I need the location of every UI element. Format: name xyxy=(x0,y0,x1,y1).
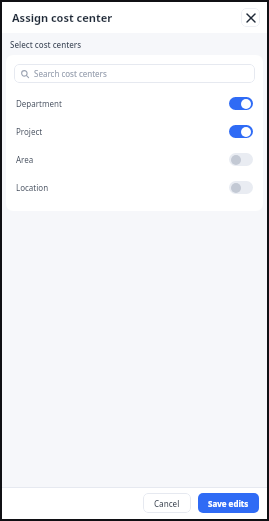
staticText: Assign cost center xyxy=(12,10,113,25)
button[interactable]: Project xyxy=(6,117,263,145)
button[interactable]: Off xyxy=(229,153,253,166)
button[interactable]: Off xyxy=(229,181,253,194)
button[interactable]: Search cost centers xyxy=(14,64,255,83)
button[interactable]: Department xyxy=(6,89,263,117)
staticText: Area xyxy=(16,154,34,165)
button[interactable]: Area xyxy=(6,145,263,173)
staticText: Department xyxy=(16,98,62,109)
button[interactable]: Cancel xyxy=(143,493,191,513)
staticText: Cancel xyxy=(154,498,180,509)
button[interactable]: Save edits xyxy=(198,493,259,513)
staticText: Location xyxy=(16,182,49,193)
staticText: Select cost centers xyxy=(10,39,82,50)
staticText: Project xyxy=(16,126,43,137)
button[interactable]: On xyxy=(229,125,253,138)
staticText: Save edits xyxy=(208,498,249,509)
button[interactable]: Close xyxy=(241,8,260,27)
button[interactable]: On xyxy=(229,97,253,110)
button[interactable]: Location xyxy=(6,173,263,201)
staticText: Search cost centers xyxy=(34,68,107,79)
